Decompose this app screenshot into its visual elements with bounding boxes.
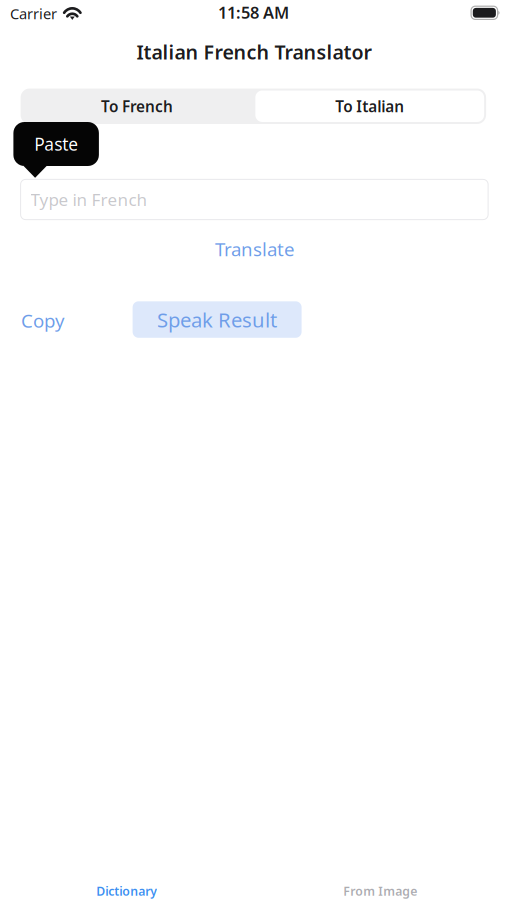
staticText: Carrier xyxy=(10,3,57,23)
staticText: To French xyxy=(101,96,173,117)
button[interactable]: Dictionary xyxy=(0,874,253,900)
button[interactable]: To Italian xyxy=(253,88,486,124)
button[interactable]: To French xyxy=(21,88,253,124)
staticText: Speak Result xyxy=(157,306,277,333)
button[interactable]: Speak Result xyxy=(133,301,302,338)
button[interactable]: From Image xyxy=(253,874,507,900)
staticText: 11:58 AM xyxy=(218,1,289,23)
button[interactable]: Translate xyxy=(200,234,310,264)
staticText: To Italian xyxy=(335,96,404,117)
staticText: Italian French Translator xyxy=(136,39,372,65)
button[interactable]: Paste xyxy=(13,122,99,178)
staticText: Copy xyxy=(21,308,65,333)
staticText: Dictionary xyxy=(96,883,157,899)
button[interactable]: Copy xyxy=(14,304,72,336)
staticText: Paste xyxy=(34,132,78,156)
staticText: From Image xyxy=(343,883,417,899)
staticText: Type in French xyxy=(31,188,148,211)
staticText: Translate xyxy=(215,236,295,262)
